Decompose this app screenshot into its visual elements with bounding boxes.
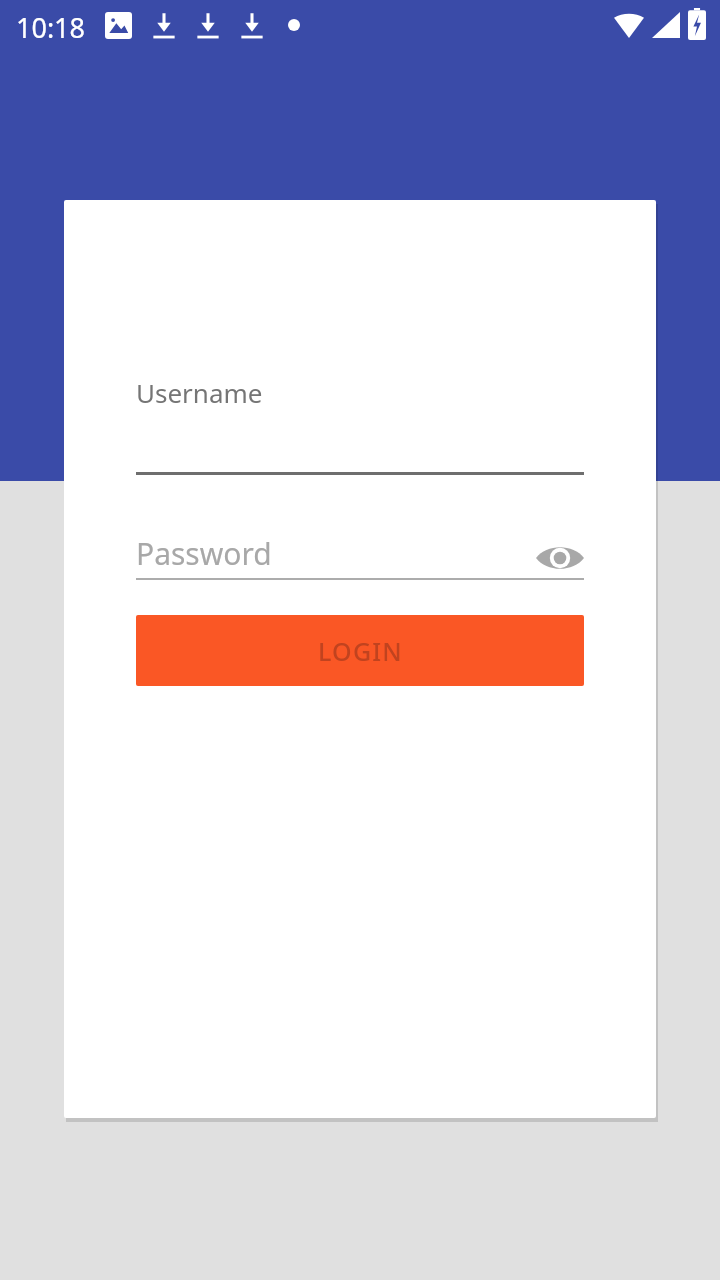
staticText: Username bbox=[136, 375, 263, 410]
staticText: LOGIN bbox=[318, 634, 403, 668]
button[interactable]: Show password bbox=[532, 530, 588, 586]
button[interactable]: LOGIN bbox=[136, 615, 584, 686]
staticText: 10:18 bbox=[16, 9, 86, 46]
staticText: Password bbox=[136, 533, 272, 574]
